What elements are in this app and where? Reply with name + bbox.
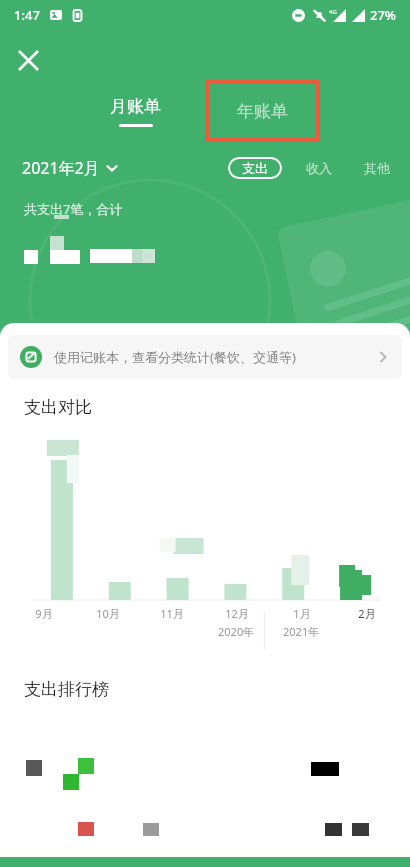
staticText: 其他 bbox=[364, 160, 390, 176]
staticText: 2021年 bbox=[283, 624, 320, 639]
staticText: 10月 bbox=[96, 606, 120, 621]
staticText: 2021年2月 bbox=[22, 157, 100, 179]
button[interactable]: 支出 bbox=[228, 157, 282, 179]
staticText: 支出排行榜 bbox=[24, 679, 109, 700]
staticText: 1:47 bbox=[14, 6, 40, 24]
button[interactable]: 月账单 bbox=[90, 92, 181, 131]
button[interactable]: 其他 bbox=[362, 156, 392, 180]
staticText: 共支出7笔，合计 bbox=[24, 200, 123, 218]
staticText: 支出对比 bbox=[24, 397, 92, 418]
staticText: 27% bbox=[370, 6, 396, 24]
staticText: 11月 bbox=[160, 606, 184, 621]
staticText: 2月 bbox=[358, 606, 376, 621]
staticText: 2020年 bbox=[218, 624, 255, 639]
button[interactable]: 年账单 bbox=[205, 80, 320, 142]
staticText: 1月 bbox=[293, 606, 311, 621]
staticText: 年账单 bbox=[237, 101, 288, 122]
button[interactable] bbox=[0, 726, 410, 836]
staticText: 9月 bbox=[35, 606, 53, 621]
staticText: 月账单 bbox=[110, 96, 161, 117]
button[interactable]: 2021年2月 bbox=[22, 157, 118, 179]
button[interactable]: Close bbox=[8, 40, 48, 80]
staticText: 使用记账本，查看分类统计(餐饮、交通等) bbox=[54, 348, 296, 366]
staticText: 收入 bbox=[306, 160, 332, 176]
button[interactable]: 收入 bbox=[304, 156, 334, 180]
staticText: 支出 bbox=[242, 160, 268, 176]
staticText: 12月 bbox=[225, 606, 249, 621]
button[interactable]: 使用记账本，查看分类统计(餐饮、交通等) bbox=[8, 335, 402, 379]
staticText: 4G bbox=[329, 8, 337, 16]
